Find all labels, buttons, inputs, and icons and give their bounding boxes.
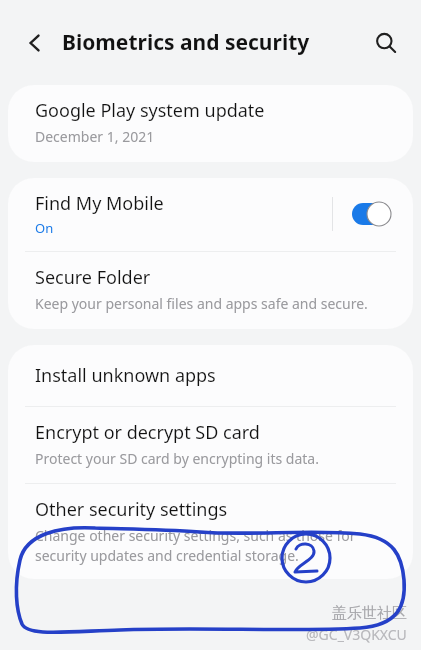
staticText: Google Play system update: [35, 98, 265, 123]
button[interactable]: Find My Mobile toggle: [349, 197, 397, 231]
button[interactable]: Install unknown apps: [8, 345, 413, 406]
staticText: Change other security settings, such as …: [35, 526, 393, 565]
staticText: @GC_V3QKXCU: [306, 625, 407, 644]
staticText: Other security settings: [35, 497, 228, 522]
staticText: On: [35, 219, 54, 237]
staticText: Biometrics and security: [62, 28, 365, 57]
button[interactable]: Google Play system update: [8, 85, 413, 162]
button[interactable]: Secure Folder: [8, 252, 413, 329]
staticText: Install unknown apps: [35, 363, 216, 388]
staticText: Encrypt or decrypt SD card: [35, 420, 260, 445]
staticText: 盖乐世社区: [332, 604, 407, 623]
button[interactable]: Encrypt or decrypt SD card: [8, 407, 413, 483]
button[interactable]: Find My Mobile: [8, 178, 413, 251]
staticText: Secure Folder: [35, 265, 151, 290]
button[interactable]: Search: [365, 22, 407, 64]
button[interactable]: Back: [14, 22, 56, 64]
staticText: Protect your SD card by encrypting its d…: [35, 449, 319, 468]
staticText: Keep your personal files and apps safe a…: [35, 294, 368, 313]
staticText: December 1, 2021: [35, 127, 155, 146]
staticText: Find My Mobile: [35, 191, 164, 216]
button[interactable]: Other security settings: [8, 484, 413, 579]
